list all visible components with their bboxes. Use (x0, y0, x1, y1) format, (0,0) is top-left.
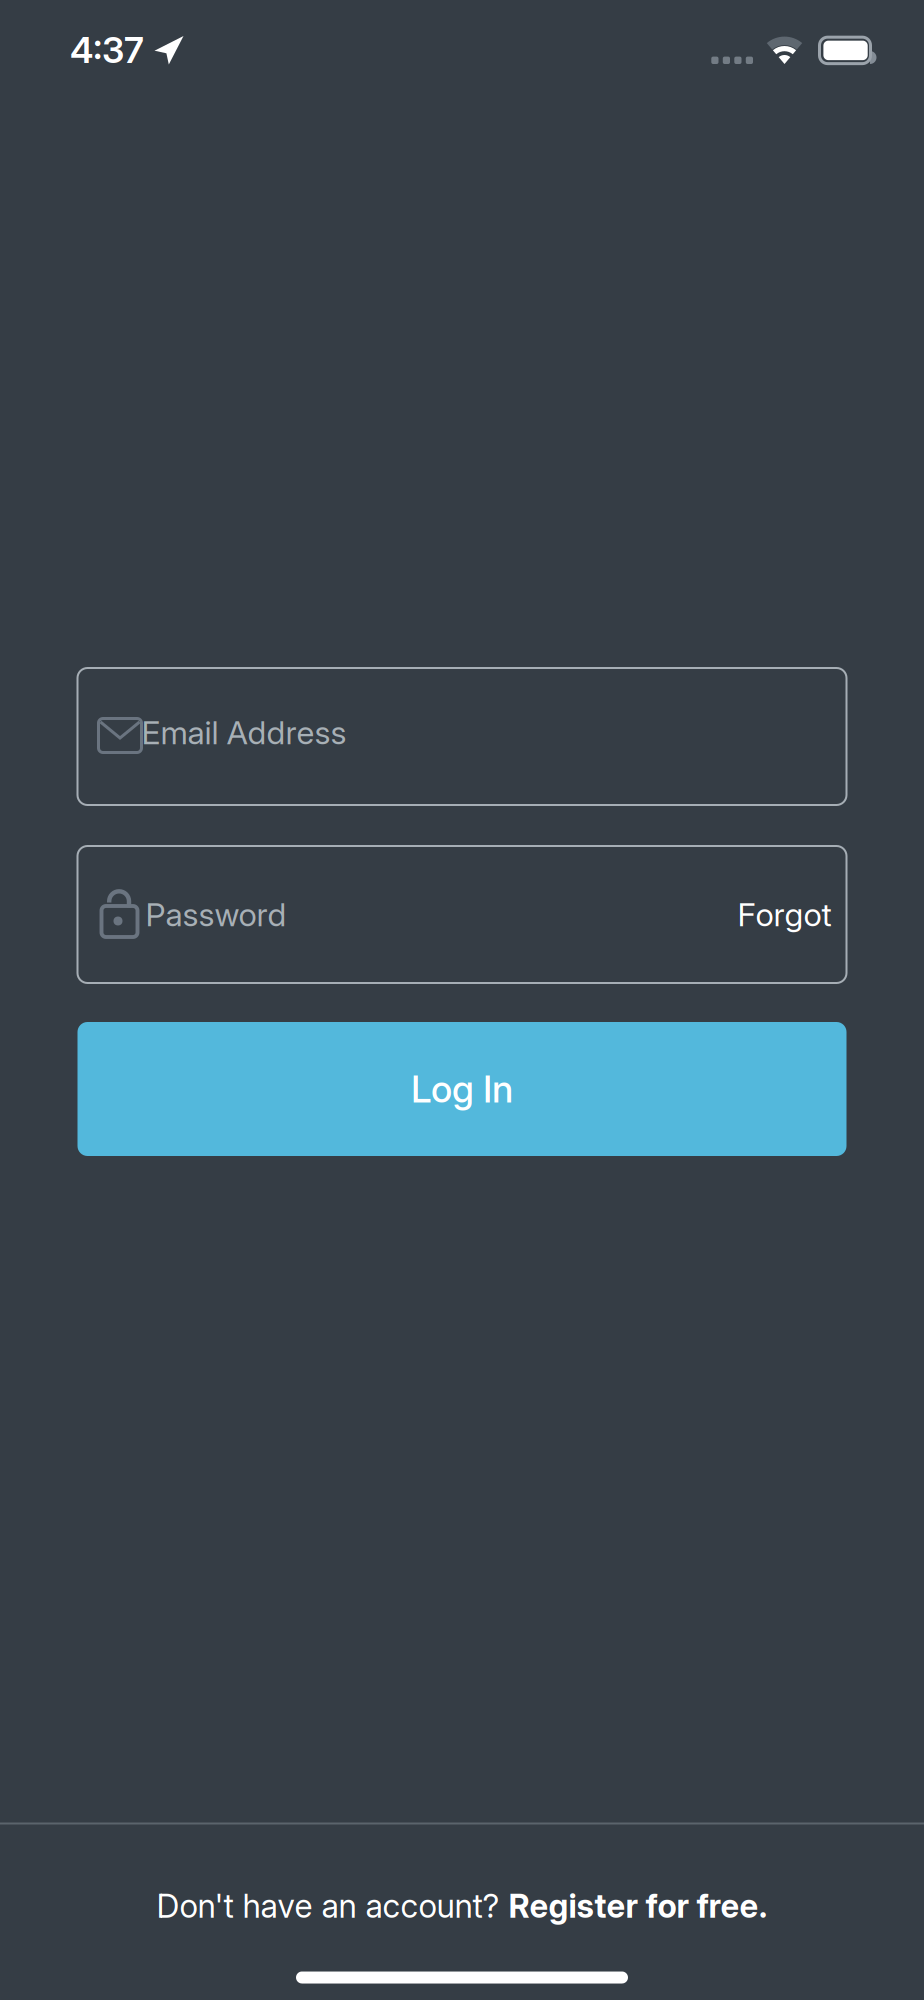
staticText: Password (145, 896, 286, 933)
button[interactable]: Log In (77, 1022, 846, 1156)
button[interactable]: Forgot (729, 876, 839, 953)
staticText: Email Address (141, 714, 346, 751)
staticText: Don't have an account? Register for free… (156, 1886, 767, 1925)
button[interactable]: Don't have an account? Register for free… (0, 1824, 924, 1925)
button[interactable]: Email Address (77, 668, 846, 805)
staticText: Log In (411, 1067, 513, 1111)
staticText: Forgot (737, 896, 831, 933)
staticText: 4:37 (70, 29, 144, 71)
